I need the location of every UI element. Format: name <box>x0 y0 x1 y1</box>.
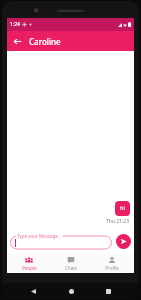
staticText: Caroline <box>29 36 61 47</box>
button[interactable]: hi <box>115 201 130 216</box>
button[interactable]: Profile <box>93 254 131 273</box>
staticText: hi <box>120 205 125 212</box>
staticText: People <box>22 265 37 271</box>
button[interactable]: People <box>10 254 48 273</box>
staticText: Chats <box>65 265 77 271</box>
button[interactable]: Back <box>9 33 25 49</box>
button[interactable]: Home <box>65 285 77 297</box>
button[interactable]: Recents <box>102 285 114 297</box>
staticText: Profile <box>105 265 119 271</box>
button[interactable]: Type your Message <box>10 233 112 250</box>
staticText: Type your Message <box>17 233 58 239</box>
staticText: Thu 21:23 <box>106 218 130 225</box>
staticText: 1:24 <box>10 21 20 28</box>
button[interactable]: Back <box>27 285 39 297</box>
button[interactable]: Chats <box>52 254 90 273</box>
button[interactable]: Send <box>116 234 131 249</box>
